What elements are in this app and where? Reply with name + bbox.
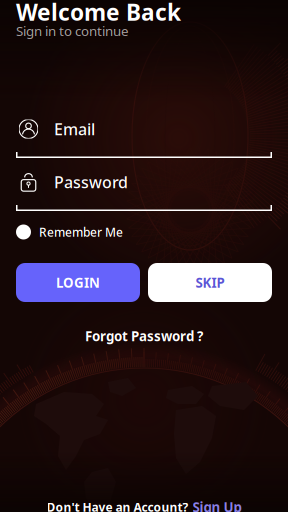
staticText: Email [54, 118, 95, 140]
button[interactable]: Forgot Password ? [16, 328, 272, 344]
staticText: Welcome Back [16, 0, 181, 27]
button[interactable]: Email [16, 119, 272, 158]
staticText: Password [54, 171, 128, 193]
staticText: Forgot Password ? [85, 327, 203, 345]
button[interactable]: Password [16, 172, 272, 211]
button[interactable]: Sign Up [192, 498, 241, 512]
staticText: Remember Me [39, 224, 123, 240]
button[interactable]: LOGIN [16, 263, 140, 302]
staticText: Don't Have an Account? [46, 499, 188, 512]
staticText: LOGIN [56, 274, 100, 291]
staticText: Sign in to continue [16, 22, 129, 40]
staticText: Sign Up [192, 498, 241, 512]
staticText: SKIP [195, 274, 224, 291]
button[interactable]: SKIP [148, 263, 272, 302]
button[interactable]: Remember Me [16, 223, 272, 241]
